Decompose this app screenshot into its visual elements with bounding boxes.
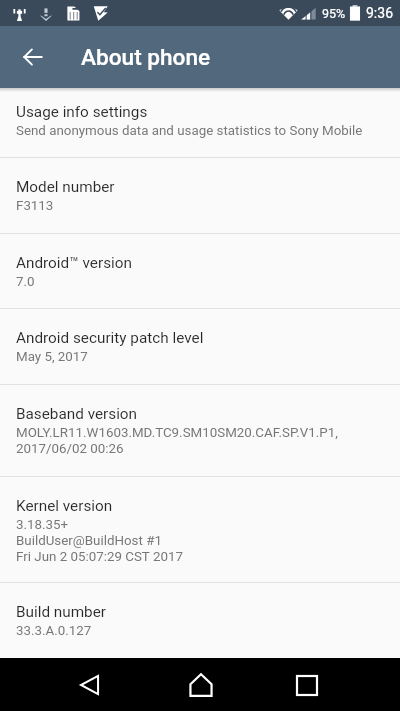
staticText: 3.18.35+ bbox=[16, 517, 69, 533]
staticText: Android security patch level bbox=[16, 329, 204, 347]
button[interactable]: Usage info settings bbox=[0, 88, 400, 158]
staticText: About phone bbox=[81, 44, 211, 70]
staticText: Android™ version bbox=[16, 254, 132, 272]
staticText: Build number bbox=[16, 603, 107, 621]
button[interactable]: Model number bbox=[0, 158, 400, 234]
button[interactable]: Navigate up bbox=[4, 29, 60, 85]
staticText: 7.0 bbox=[16, 274, 35, 290]
button[interactable]: Baseband version bbox=[0, 385, 400, 477]
button[interactable]: Android™ version bbox=[0, 234, 400, 309]
staticText: 9:36 bbox=[366, 5, 393, 21]
button[interactable]: Build number bbox=[0, 583, 400, 658]
staticText: 2017/06/02 00:26 bbox=[16, 441, 124, 457]
button[interactable]: Back bbox=[61, 661, 117, 709]
staticText: Kernel version bbox=[16, 497, 113, 515]
button[interactable]: Home bbox=[173, 661, 229, 709]
staticText: F3113 bbox=[16, 198, 54, 214]
staticText: Send anonymous data and usage statistics… bbox=[16, 123, 363, 139]
staticText: May 5, 2017 bbox=[16, 349, 88, 365]
staticText: 95% bbox=[322, 6, 346, 21]
staticText: MOLY.LR11.W1603.MD.TC9.SM10SM20.CAF.SP.V… bbox=[16, 425, 338, 441]
staticText: Model number bbox=[16, 178, 115, 196]
staticText: 33.3.A.0.127 bbox=[16, 623, 92, 639]
staticText: Fri Jun 2 05:07:29 CST 2017 bbox=[16, 549, 183, 565]
button[interactable]: Android security patch level bbox=[0, 309, 400, 385]
staticText: Usage info settings bbox=[16, 103, 148, 121]
button[interactable]: Recent apps bbox=[279, 661, 335, 709]
staticText: BuildUser@BuildHost #1 bbox=[16, 533, 162, 549]
button[interactable]: Kernel version bbox=[0, 477, 400, 583]
staticText: Baseband version bbox=[16, 405, 138, 423]
